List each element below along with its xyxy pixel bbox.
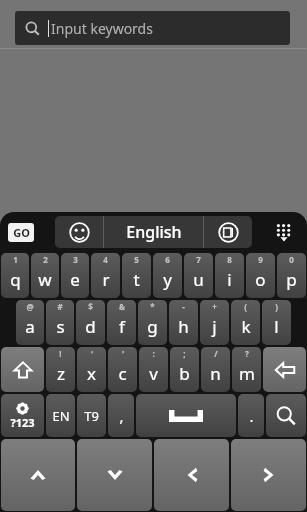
staticText: , <box>119 406 124 426</box>
staticText: ’ <box>122 348 124 359</box>
button[interactable]: - <box>169 300 198 345</box>
button[interactable]: * <box>138 300 167 345</box>
button[interactable]: 7 <box>184 253 213 298</box>
staticText: d <box>85 315 96 338</box>
button[interactable]: Emoji <box>55 216 103 248</box>
button[interactable]: 5 <box>122 253 151 298</box>
staticText: ‘ <box>91 348 93 359</box>
button[interactable]: 9 <box>246 253 275 298</box>
staticText: @ <box>26 301 34 312</box>
button[interactable]: Right <box>231 439 306 511</box>
button[interactable]: 1 <box>1 253 29 298</box>
staticText: w <box>38 268 52 291</box>
staticText: s <box>56 315 65 338</box>
button[interactable]: + <box>200 300 229 345</box>
button[interactable]: 3 <box>61 253 89 298</box>
button[interactable]: & <box>107 300 136 345</box>
staticText: b <box>179 362 190 385</box>
staticText: g <box>147 315 158 338</box>
button[interactable]: More <box>267 215 301 249</box>
staticText: ( <box>244 301 247 312</box>
staticText: t <box>133 268 140 291</box>
staticText: y <box>163 268 172 291</box>
button[interactable]: ) <box>262 300 291 345</box>
button[interactable]: / <box>201 347 230 392</box>
staticText: r <box>102 268 110 291</box>
staticText: ? <box>245 348 249 359</box>
button[interactable]: Space <box>136 394 236 437</box>
staticText: & <box>119 301 125 312</box>
staticText: EN <box>52 407 70 425</box>
staticText: - <box>182 301 185 312</box>
staticText: Input keywords <box>51 19 153 38</box>
staticText: ! <box>59 348 62 359</box>
staticText: GO <box>13 225 30 240</box>
staticText: n <box>210 362 221 385</box>
button[interactable]: . <box>238 394 264 437</box>
button[interactable]: Input keywords <box>15 11 290 45</box>
button[interactable]: Down <box>77 439 152 511</box>
staticText: ; <box>183 348 186 359</box>
staticText: p <box>286 268 297 291</box>
staticText: e <box>70 268 80 291</box>
button[interactable]: 2 <box>31 253 59 298</box>
button[interactable]: GO <box>8 223 34 242</box>
button[interactable]: EN <box>46 394 75 437</box>
staticText: 9 <box>258 254 263 265</box>
button[interactable]: Symbols <box>1 394 44 437</box>
staticText: 5 <box>134 254 139 265</box>
staticText: i <box>227 268 232 291</box>
staticText: 6 <box>165 254 170 265</box>
staticText: u <box>193 268 204 291</box>
staticText: a <box>25 315 35 338</box>
staticText: 2 <box>43 254 48 265</box>
staticText: x <box>87 362 96 385</box>
staticText: ?123 <box>10 415 35 430</box>
button[interactable]: ( <box>231 300 260 345</box>
button[interactable]: English <box>104 216 203 248</box>
button[interactable]: ; <box>170 347 199 392</box>
staticText: # <box>57 301 63 312</box>
button[interactable]: , <box>108 394 134 437</box>
staticText: h <box>178 315 189 338</box>
button[interactable]: 6 <box>153 253 182 298</box>
button[interactable]: Left <box>154 439 229 511</box>
staticText: q <box>10 268 21 291</box>
button[interactable]: : <box>139 347 168 392</box>
button[interactable]: 8 <box>215 253 244 298</box>
button[interactable]: # <box>46 300 74 345</box>
staticText: v <box>149 362 158 385</box>
button[interactable]: ! <box>46 347 75 392</box>
button[interactable]: Shift <box>1 347 44 392</box>
staticText: o <box>255 268 266 291</box>
staticText: k <box>241 315 251 338</box>
button[interactable]: ? <box>232 347 261 392</box>
staticText: f <box>119 315 125 338</box>
staticText: 8 <box>227 254 232 265</box>
button[interactable]: ’ <box>108 347 137 392</box>
button[interactable]: T9 <box>77 394 106 437</box>
button[interactable]: Up <box>1 439 75 511</box>
button[interactable]: @ <box>16 300 44 345</box>
staticText: $ <box>88 301 93 312</box>
staticText: 0 <box>289 254 294 265</box>
staticText: 4 <box>103 254 108 265</box>
staticText: : <box>152 348 155 359</box>
staticText: / <box>214 348 218 359</box>
staticText: c <box>118 362 127 385</box>
button[interactable]: Backspace <box>263 347 306 392</box>
staticText: 7 <box>196 254 201 265</box>
staticText: + <box>212 301 217 312</box>
staticText: 1 <box>13 254 18 265</box>
button[interactable]: 4 <box>91 253 120 298</box>
button[interactable]: Switch layout <box>204 216 252 248</box>
staticText: m <box>239 362 255 385</box>
button[interactable]: ‘ <box>77 347 106 392</box>
button[interactable]: 0 <box>277 253 306 298</box>
staticText: English <box>126 221 182 243</box>
staticText: l <box>274 315 279 338</box>
button[interactable]: $ <box>76 300 105 345</box>
staticText: * <box>150 301 155 312</box>
staticText: ) <box>275 301 278 312</box>
button[interactable]: Search <box>266 394 306 437</box>
